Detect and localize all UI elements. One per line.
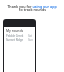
staticText: Sunset Ridge — [6, 38, 24, 42]
button[interactable]: Pebble Creek — [6, 34, 33, 38]
button[interactable]: Sunset Ridge — [6, 38, 33, 42]
staticText: Thank you for using our app — [7, 4, 57, 9]
staticText: Pebble Creek — [6, 34, 24, 38]
staticText: Sat — [28, 34, 33, 38]
staticText: Sun — [28, 38, 33, 42]
button[interactable]: My rounds — [6, 28, 24, 33]
staticText: to track rounds — [19, 7, 46, 12]
